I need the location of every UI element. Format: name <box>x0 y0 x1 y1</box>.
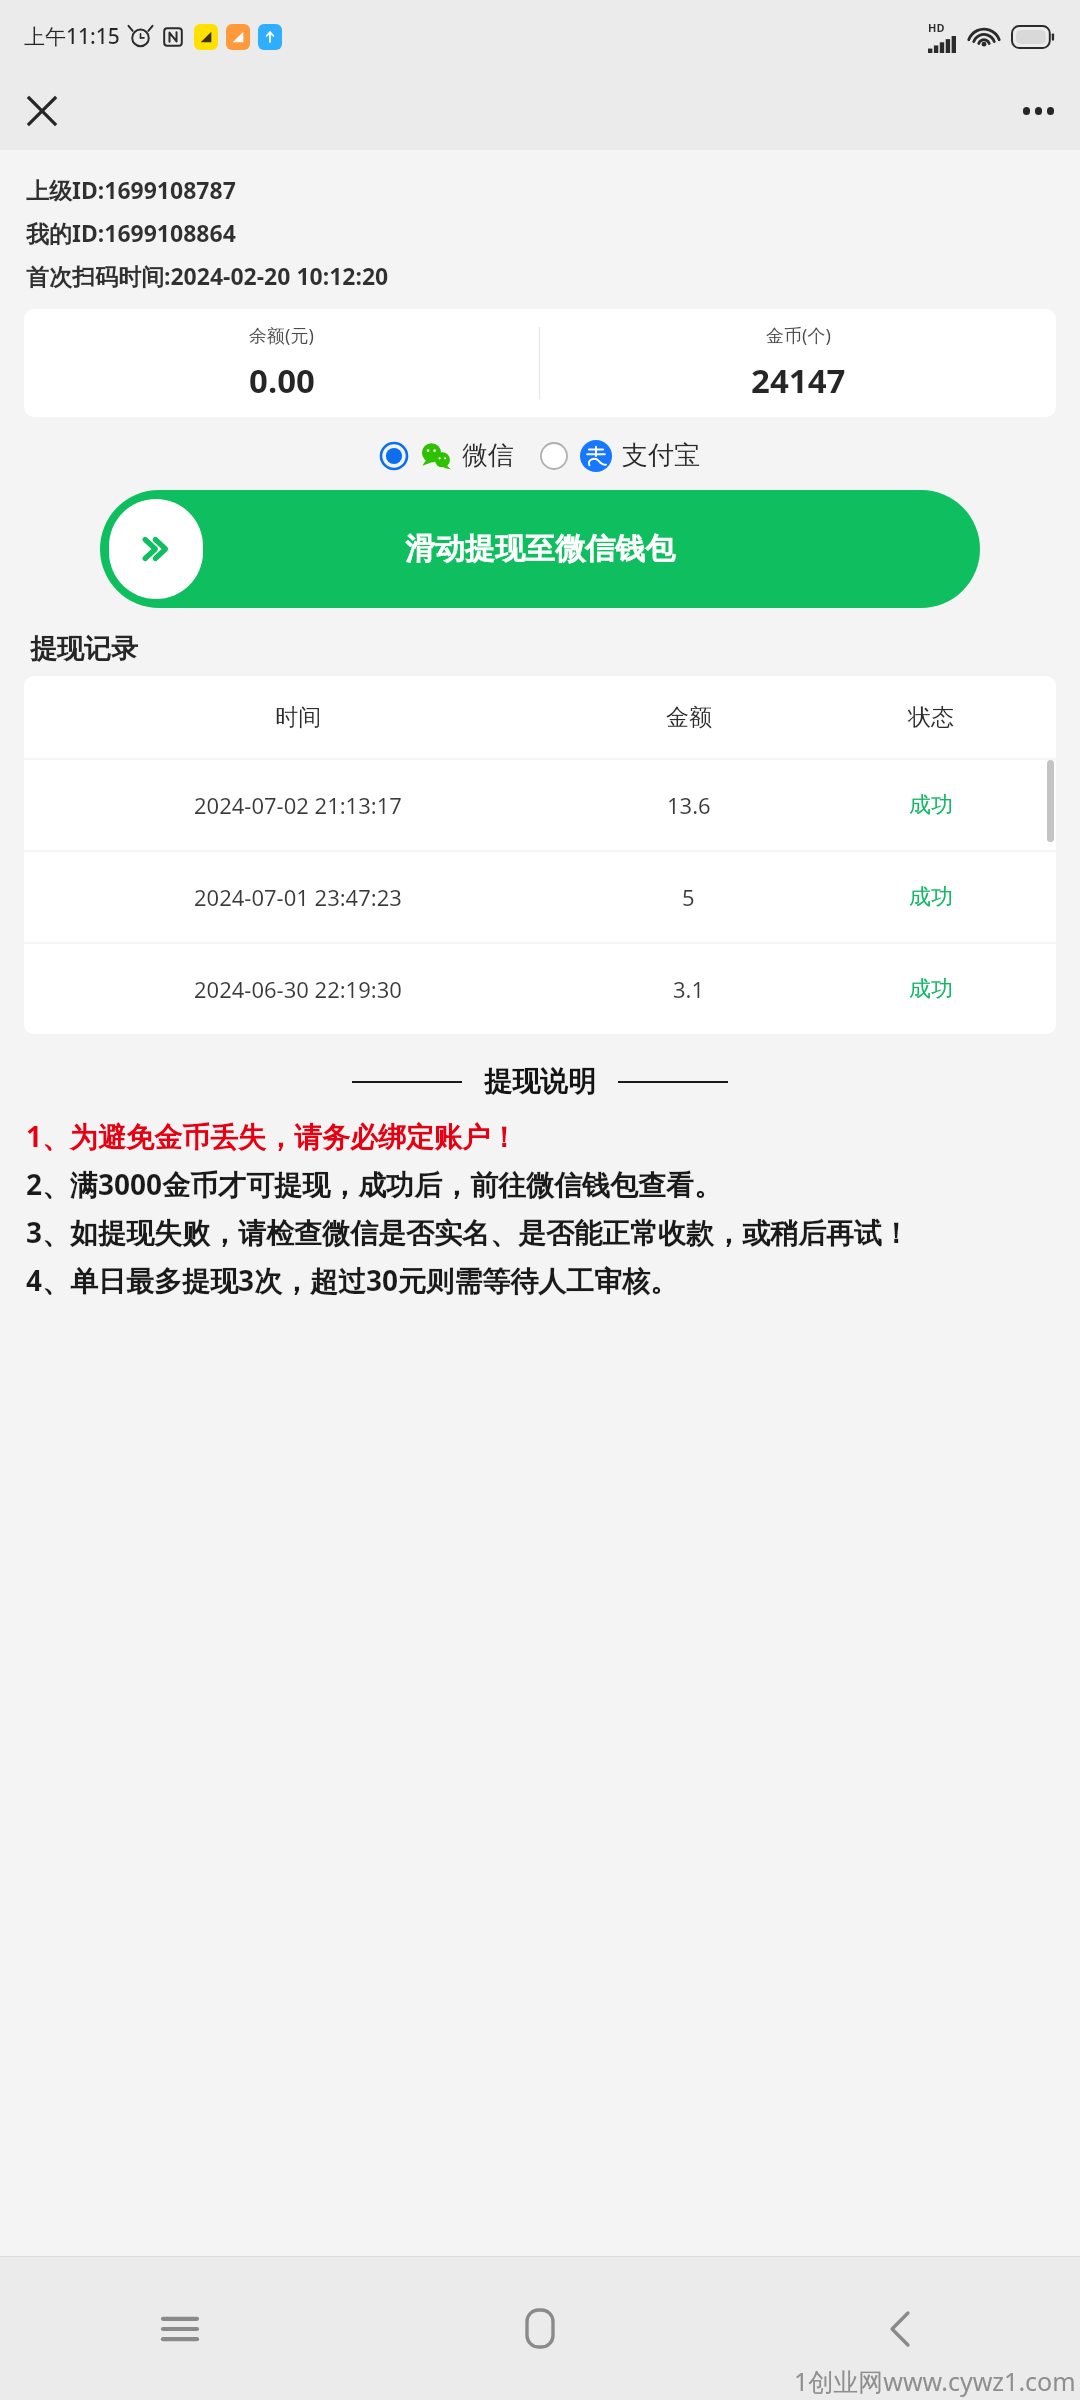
staticText: 2024-07-01 23:47:23 <box>194 882 402 912</box>
staticText: 余额(元) <box>249 323 314 348</box>
button[interactable]: 2024-06-30 22:19:30 <box>24 944 1056 1034</box>
staticText: 首次扫码时间:2024-02-20 10:12:20 <box>26 260 389 291</box>
staticText: 24147 <box>751 358 846 403</box>
button[interactable]: Close <box>14 83 70 139</box>
staticText: 支付宝 <box>622 439 700 472</box>
staticText: 金币(个) <box>766 323 831 348</box>
staticText: 13.6 <box>667 790 711 820</box>
button[interactable]: Recents <box>0 2257 360 2400</box>
button[interactable]: 时间 <box>24 676 1056 758</box>
button[interactable]: 微信 <box>380 439 514 472</box>
staticText: 2024-07-02 21:13:17 <box>194 790 402 820</box>
staticText: 3、如提现失败，请检查微信是否实名、是否能正常收款，或稍后再试！ <box>26 1213 911 1251</box>
button[interactable]: Home <box>360 2257 720 2400</box>
button[interactable]: 滑动提现至微信钱包 <box>100 490 980 608</box>
staticText: 1创业网www.cywz1.com <box>794 2364 1076 2398</box>
staticText: 3.1 <box>673 974 705 1004</box>
staticText: 2024-06-30 22:19:30 <box>194 974 402 1004</box>
staticText: 5 <box>682 882 695 912</box>
staticText: 2、满3000金币才可提现，成功后，前往微信钱包查看。 <box>26 1165 723 1203</box>
staticText: 时间 <box>275 703 321 732</box>
button[interactable]: Back <box>720 2257 1080 2400</box>
staticText: 金额 <box>666 703 712 732</box>
staticText: 上午11:15 <box>24 22 120 51</box>
staticText: 1、为避免金币丢失，请务必绑定账户！ <box>26 1117 519 1155</box>
staticText: HD <box>928 20 945 35</box>
staticText: 滑动提现至微信钱包 <box>405 530 675 568</box>
staticText: 0.00 <box>249 358 315 403</box>
button[interactable]: More options <box>1010 83 1066 139</box>
staticText: 状态 <box>908 703 954 732</box>
button[interactable]: 支付宝 <box>540 439 700 472</box>
staticText: 成功 <box>909 791 953 819</box>
staticText: 成功 <box>909 975 953 1003</box>
staticText: 提现说明 <box>484 1064 596 1099</box>
staticText: 提现记录 <box>30 632 138 666</box>
staticText: 我的ID:1699108864 <box>26 217 236 248</box>
staticText: 成功 <box>909 883 953 911</box>
button[interactable]: 2024-07-01 23:47:23 <box>24 852 1056 942</box>
staticText: 微信 <box>462 439 514 472</box>
staticText: 4、单日最多提现3次，超过30元则需等待人工审核。 <box>26 1261 679 1299</box>
button[interactable]: 2024-07-02 21:13:17 <box>24 760 1056 850</box>
staticText: 上级ID:1699108787 <box>26 174 236 205</box>
